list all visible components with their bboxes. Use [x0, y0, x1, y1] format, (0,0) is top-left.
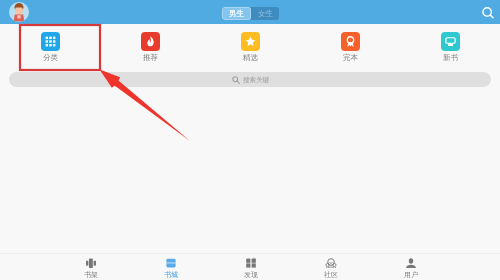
- button[interactable]: Profile: [9, 2, 29, 22]
- staticText: 推荐: [143, 53, 158, 62]
- button[interactable]: 女生: [251, 7, 279, 20]
- button[interactable]: 推荐: [100, 24, 200, 72]
- button[interactable]: 新书: [400, 24, 500, 72]
- button[interactable]: 男生: [222, 7, 251, 20]
- staticText: 精选: [243, 53, 258, 62]
- button[interactable]: 书架: [51, 254, 131, 280]
- staticText: 新书: [443, 53, 458, 62]
- staticText: 男生: [229, 9, 244, 18]
- button[interactable]: 用户: [371, 254, 451, 280]
- button[interactable]: 精选: [200, 24, 300, 72]
- button[interactable]: 书城: [131, 254, 211, 280]
- button[interactable]: 分类: [0, 24, 100, 72]
- button[interactable]: 社区: [291, 254, 371, 280]
- button[interactable]: 完本: [300, 24, 400, 72]
- staticText: 完本: [343, 53, 358, 62]
- staticText: 用户: [404, 270, 418, 279]
- button[interactable]: Search: [478, 2, 498, 22]
- staticText: 书架: [84, 270, 98, 279]
- staticText: 书城: [164, 270, 178, 279]
- button[interactable]: 搜索关键: [9, 72, 491, 87]
- staticText: 女生: [258, 9, 273, 18]
- staticText: 发现: [244, 270, 258, 279]
- staticText: 搜索关键: [243, 76, 269, 84]
- staticText: 社区: [324, 270, 338, 279]
- staticText: 分类: [43, 53, 58, 62]
- button[interactable]: 发现: [211, 254, 291, 280]
